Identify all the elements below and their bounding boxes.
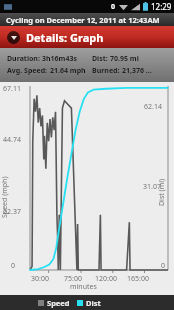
staticText: Dist: — [92, 54, 108, 64]
staticText: 67.11 — [3, 84, 21, 94]
staticText: Details: Graph — [26, 30, 104, 45]
staticText: 12:29 — [151, 1, 172, 12]
button[interactable]: Open graph selector — [0, 26, 174, 48]
other: Open graph selector — [7, 31, 20, 44]
staticText: Duration: — [7, 54, 40, 64]
staticText: 21.64 mph — [50, 66, 86, 76]
staticText: Cycling on December 12, 2011 at 12:43AM — [6, 15, 160, 25]
staticText: Dist — [86, 298, 101, 308]
staticText: 30:00 — [31, 274, 49, 284]
staticText: Dist (mi) — [157, 178, 167, 206]
staticText: 22.37 — [3, 207, 21, 217]
staticText: 70.95 mi — [110, 54, 139, 64]
button[interactable]: Speed — [0, 295, 174, 310]
staticText: 44.74 — [3, 135, 21, 145]
staticText: minutes — [70, 282, 97, 292]
staticText: 31.07 — [143, 182, 161, 192]
staticText: 0 — [11, 261, 16, 271]
staticText: 120:00 — [95, 274, 117, 284]
staticText: Burned: — [92, 66, 120, 76]
staticText: Avg. Speed: — [7, 66, 48, 76]
staticText: Speed (mph) — [0, 176, 10, 218]
staticText: 3h16m43s — [42, 54, 77, 64]
staticText: 21,376 ... — [122, 66, 152, 76]
staticText: 0 — [161, 261, 166, 271]
staticText: Speed — [47, 298, 70, 308]
staticText: 62.14 — [144, 102, 162, 112]
staticText: 75:00 — [64, 274, 82, 284]
staticText: 0 — [111, 2, 116, 12]
staticText: 165:00 — [127, 274, 149, 284]
